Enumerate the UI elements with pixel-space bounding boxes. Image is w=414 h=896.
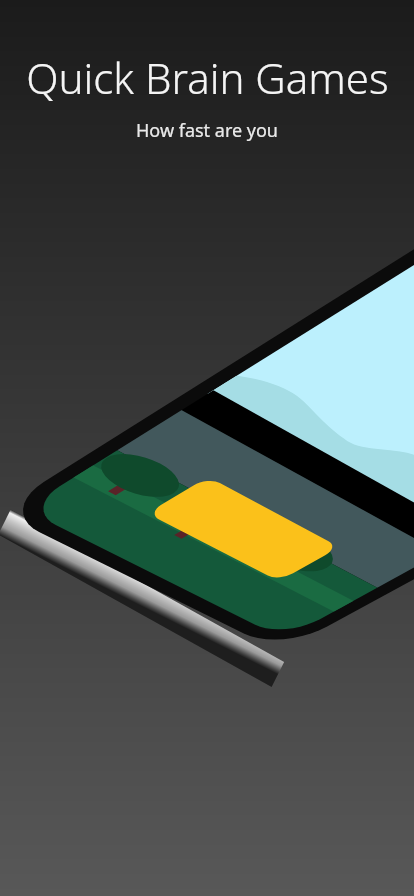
staticText: Quick Brain Games [26,49,389,106]
staticText: How fast are you [136,118,278,143]
